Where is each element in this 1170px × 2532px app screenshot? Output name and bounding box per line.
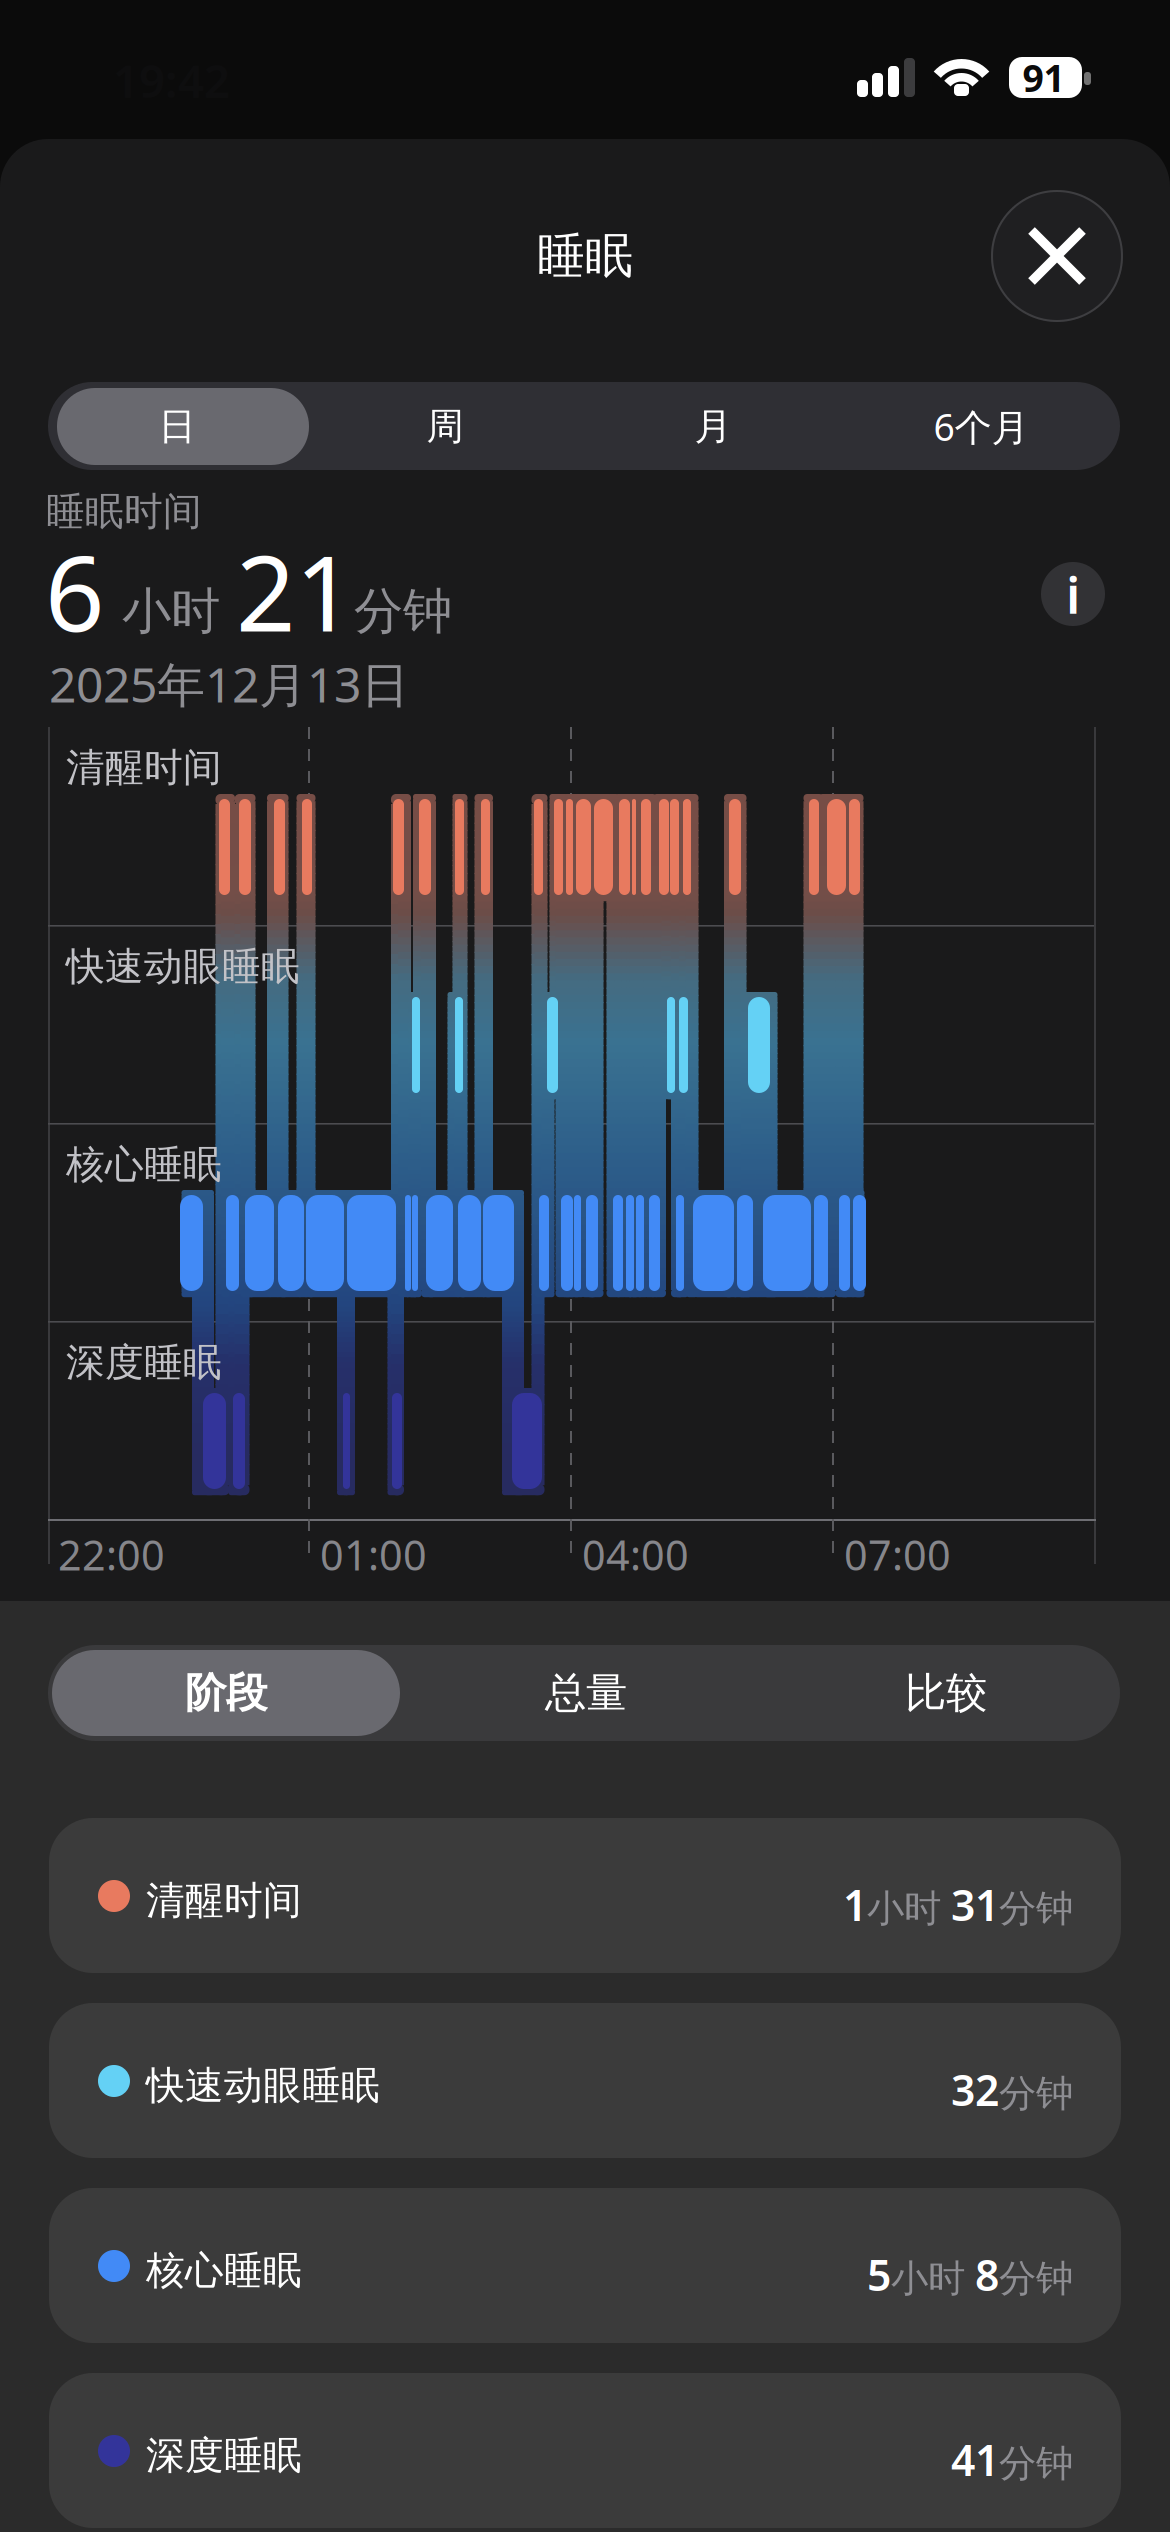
staticText: 22:00 bbox=[58, 1527, 165, 1582]
staticText: 清醒时间 bbox=[146, 1877, 302, 1924]
staticText: 快速动眼睡眠 bbox=[66, 943, 300, 990]
staticText: 深度睡眠 bbox=[146, 2432, 302, 2479]
staticText: 分钟 bbox=[999, 2440, 1073, 2486]
staticText: 睡眠 bbox=[537, 226, 633, 285]
staticText: 阶段 bbox=[185, 1668, 267, 1718]
staticText: 睡眠时间 bbox=[46, 488, 202, 535]
staticText: 总量 bbox=[545, 1668, 627, 1718]
staticText: 核心睡眠 bbox=[66, 1141, 222, 1188]
staticText: 6 bbox=[45, 522, 104, 660]
staticText: 8 bbox=[975, 2246, 999, 2303]
staticText: i bbox=[1066, 560, 1080, 628]
button[interactable]: 总量 bbox=[412, 1650, 760, 1736]
staticText: 深度睡眠 bbox=[66, 1339, 222, 1386]
staticText: 小时 bbox=[122, 581, 220, 642]
staticText: 分钟 bbox=[354, 581, 452, 642]
staticText: 31 bbox=[951, 1876, 999, 1933]
staticText: 41 bbox=[951, 2431, 999, 2488]
staticText: 周 bbox=[426, 404, 463, 449]
staticText: 小时 bbox=[867, 1885, 941, 1931]
staticText: 91 bbox=[1022, 53, 1064, 102]
staticText: 07:00 bbox=[844, 1527, 951, 1582]
staticText: 比较 bbox=[905, 1668, 987, 1718]
button[interactable]: Info bbox=[1041, 562, 1105, 626]
button[interactable]: 比较 bbox=[772, 1650, 1120, 1736]
button[interactable]: 核心睡眠 bbox=[49, 2188, 1121, 2343]
button[interactable]: 快速动眼睡眠 bbox=[49, 2003, 1121, 2158]
button[interactable]: 日 bbox=[51, 388, 303, 465]
staticText: 日 bbox=[158, 404, 195, 449]
staticText: 清醒时间 bbox=[66, 744, 222, 791]
button[interactable]: Close bbox=[991, 190, 1123, 322]
button[interactable]: 深度睡眠 bbox=[49, 2373, 1121, 2528]
staticText: 2025年12月13日 bbox=[49, 652, 409, 716]
staticText: 04:00 bbox=[582, 1527, 689, 1582]
staticText: 6个月 bbox=[933, 402, 1028, 451]
staticText: 21 bbox=[236, 522, 354, 660]
staticText: 月 bbox=[694, 404, 731, 449]
button[interactable]: 月 bbox=[579, 388, 847, 465]
staticText: 快速动眼睡眠 bbox=[146, 2062, 380, 2109]
staticText: 1 bbox=[843, 1876, 867, 1933]
staticText: 分钟 bbox=[999, 1885, 1073, 1931]
button[interactable]: 清醒时间 bbox=[49, 1818, 1121, 1973]
staticText: 小时 bbox=[891, 2255, 965, 2301]
staticText: 01:00 bbox=[320, 1527, 427, 1582]
button[interactable]: 周 bbox=[311, 388, 579, 465]
button[interactable]: 6个月 bbox=[847, 388, 1115, 465]
staticText: 分钟 bbox=[999, 2255, 1073, 2301]
staticText: 分钟 bbox=[999, 2070, 1073, 2116]
staticText: 5 bbox=[867, 2246, 891, 2303]
staticText: 32 bbox=[951, 2061, 999, 2118]
staticText: 核心睡眠 bbox=[146, 2247, 302, 2294]
button[interactable]: 阶段 bbox=[52, 1650, 400, 1736]
